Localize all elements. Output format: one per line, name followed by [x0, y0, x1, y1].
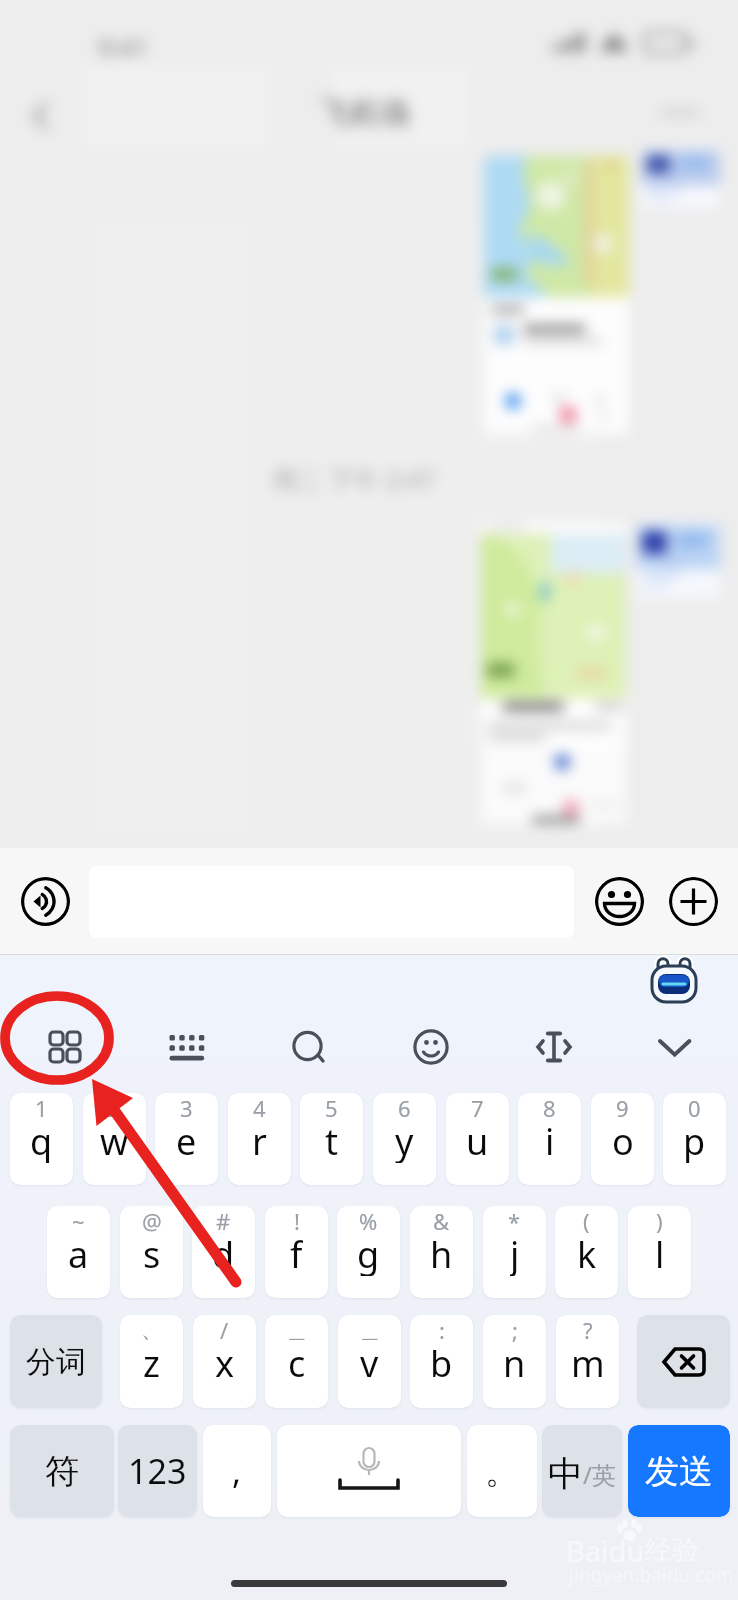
staticText: o — [612, 1117, 634, 1163]
staticText: 2 — [108, 1093, 121, 1123]
staticText: v — [360, 1339, 379, 1385]
button[interactable]: Keyboard — [147, 1007, 227, 1087]
button[interactable]: ? — [556, 1315, 619, 1408]
staticText: ) — [656, 1206, 663, 1236]
staticText: ; — [512, 1315, 518, 1345]
staticText: j — [510, 1230, 520, 1276]
button[interactable]: ＿ — [265, 1315, 328, 1408]
button[interactable] — [637, 1315, 730, 1408]
button[interactable]: % — [337, 1206, 400, 1298]
staticText: , — [232, 1448, 242, 1494]
staticText: 周二 下午 2:47 — [272, 462, 435, 496]
staticText: b — [430, 1339, 453, 1385]
button[interactable]: Emoji — [595, 877, 644, 926]
button[interactable]: , — [203, 1425, 271, 1517]
button[interactable]: Voice input — [21, 877, 70, 926]
button[interactable]: 7 — [446, 1093, 509, 1185]
staticText: @ — [142, 1206, 162, 1236]
button[interactable]: 分词 — [10, 1315, 102, 1408]
button[interactable]: / — [193, 1315, 256, 1408]
staticText: # — [216, 1206, 231, 1236]
button[interactable]: 1 — [10, 1093, 73, 1185]
button[interactable]: ; — [483, 1315, 546, 1408]
staticText: : — [439, 1315, 445, 1345]
button[interactable]: 符 — [10, 1425, 114, 1517]
staticText: 飞机场 — [320, 94, 410, 132]
button[interactable]: Cursor — [513, 1007, 593, 1087]
staticText: Baidu — [566, 1531, 645, 1570]
staticText: i — [545, 1117, 555, 1163]
staticText: q — [30, 1117, 53, 1163]
staticText: / — [220, 1315, 229, 1345]
button[interactable]: Apps — [25, 1007, 105, 1087]
staticText: g — [357, 1230, 380, 1276]
staticText: 1 — [35, 1093, 48, 1123]
staticText: 。 — [485, 1450, 519, 1493]
button[interactable]: 2 — [83, 1093, 146, 1185]
staticText: ~ — [72, 1206, 85, 1236]
staticText: ＿ — [359, 1316, 381, 1344]
button[interactable]: 、 — [120, 1315, 183, 1408]
staticText: % — [359, 1206, 378, 1236]
button[interactable]: 4 — [228, 1093, 291, 1185]
staticText: w — [100, 1117, 129, 1163]
staticText: a — [68, 1230, 89, 1276]
staticText: d — [212, 1230, 235, 1276]
staticText: 6 — [398, 1093, 411, 1123]
button[interactable]: 中 — [542, 1425, 622, 1517]
button[interactable]: Search — [269, 1007, 349, 1087]
staticText: ? — [583, 1315, 593, 1345]
staticText: 9 — [616, 1093, 629, 1123]
button[interactable]: More — [669, 877, 718, 926]
button[interactable]: Assistant — [650, 954, 698, 1004]
button[interactable]: * — [483, 1206, 546, 1298]
staticText: 发送 — [645, 1450, 713, 1493]
staticText: n — [503, 1339, 526, 1385]
button[interactable]: ( — [555, 1206, 618, 1298]
staticText: 符 — [45, 1450, 79, 1493]
button[interactable]: 发送 — [628, 1425, 730, 1517]
staticText: 4 — [253, 1093, 266, 1123]
staticText: t — [325, 1117, 338, 1163]
button[interactable]: ~ — [47, 1206, 110, 1298]
button[interactable]: : — [410, 1315, 473, 1408]
staticText: 、 — [141, 1316, 163, 1344]
staticText: r — [252, 1117, 267, 1163]
staticText: 5 — [325, 1093, 338, 1123]
button[interactable]: ＿ — [338, 1315, 401, 1408]
staticText: x — [215, 1339, 235, 1385]
staticText: & — [433, 1206, 450, 1236]
staticText: 中 — [548, 1452, 583, 1496]
button[interactable]: 123 — [118, 1425, 197, 1517]
button[interactable]: 9 — [591, 1093, 654, 1185]
button[interactable]: ! — [265, 1206, 328, 1298]
staticText: 8 — [543, 1093, 556, 1123]
button[interactable]: 。 — [467, 1425, 537, 1517]
button[interactable]: 5 — [300, 1093, 363, 1185]
staticText: 3 — [180, 1093, 193, 1123]
staticText: z — [143, 1339, 160, 1385]
staticText: p — [683, 1117, 706, 1163]
button[interactable] — [277, 1425, 461, 1517]
staticText: /英 — [583, 1458, 616, 1491]
button[interactable]: 6 — [373, 1093, 436, 1185]
staticText: ( — [583, 1206, 590, 1236]
button[interactable]: 8 — [518, 1093, 581, 1185]
button[interactable]: Collapse — [635, 1007, 715, 1087]
button[interactable]: & — [410, 1206, 473, 1298]
staticText: k — [577, 1230, 597, 1276]
button[interactable]: Emoji — [391, 1007, 471, 1087]
staticText: c — [288, 1339, 306, 1385]
button[interactable]: 3 — [155, 1093, 218, 1185]
staticText: f — [290, 1230, 303, 1276]
staticText: l — [655, 1230, 665, 1276]
button[interactable]: @ — [120, 1206, 183, 1298]
staticText: y — [395, 1117, 414, 1163]
staticText: s — [143, 1230, 161, 1276]
button[interactable]: # — [192, 1206, 255, 1298]
button[interactable]: 0 — [663, 1093, 726, 1185]
button[interactable]: ) — [628, 1206, 691, 1298]
staticText: m — [571, 1339, 605, 1385]
